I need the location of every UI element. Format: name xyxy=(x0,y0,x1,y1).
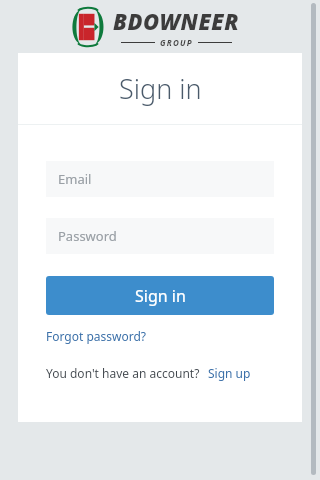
button[interactable]: Password xyxy=(46,218,274,254)
staticText: Forgot password? xyxy=(46,328,147,344)
staticText: You don't have an account? xyxy=(46,365,200,381)
staticText: BDOWNEER xyxy=(113,6,239,36)
staticText: Sign up xyxy=(208,365,251,381)
staticText: Email xyxy=(58,170,92,188)
staticText: Password xyxy=(58,227,117,245)
button[interactable]: Sign up xyxy=(208,363,251,383)
button[interactable]: Email xyxy=(46,161,274,197)
staticText: Sign in xyxy=(135,285,186,307)
button[interactable]: Forgot password? xyxy=(46,326,147,346)
button[interactable]: Sign in xyxy=(46,276,274,315)
staticText: GROUP xyxy=(160,37,193,48)
staticText: Sign in xyxy=(119,70,202,107)
other: Bdowneer Group logo xyxy=(69,7,107,47)
